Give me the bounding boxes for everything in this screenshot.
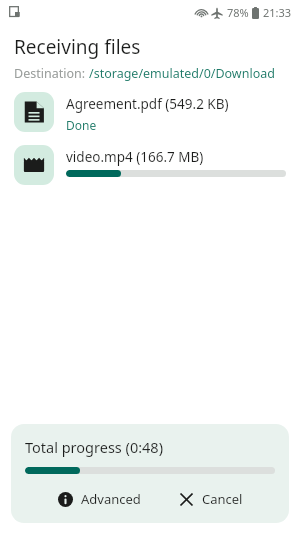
- staticText: 78%: [227, 5, 249, 20]
- button[interactable]: Advanced: [48, 483, 151, 515]
- button[interactable]: Agreement.pdf (549.2 KB): [0, 92, 300, 133]
- staticText: Total progress (0:48): [25, 437, 164, 457]
- staticText: Cancel: [202, 490, 243, 508]
- staticText: Destination:: [14, 65, 89, 82]
- staticText: Receiving files: [14, 34, 141, 60]
- button[interactable]: video.mp4 (166.7 MB): [0, 145, 300, 185]
- staticText: Agreement.pdf (549.2 KB): [66, 95, 229, 113]
- staticText: /storage/emulated/0/Download: [89, 65, 275, 82]
- staticText: Advanced: [81, 490, 141, 508]
- button[interactable]: Cancel: [169, 483, 253, 515]
- staticText: 21:33: [263, 5, 292, 20]
- staticText: video.mp4 (166.7 MB): [66, 148, 204, 166]
- staticText: Done: [66, 117, 97, 133]
